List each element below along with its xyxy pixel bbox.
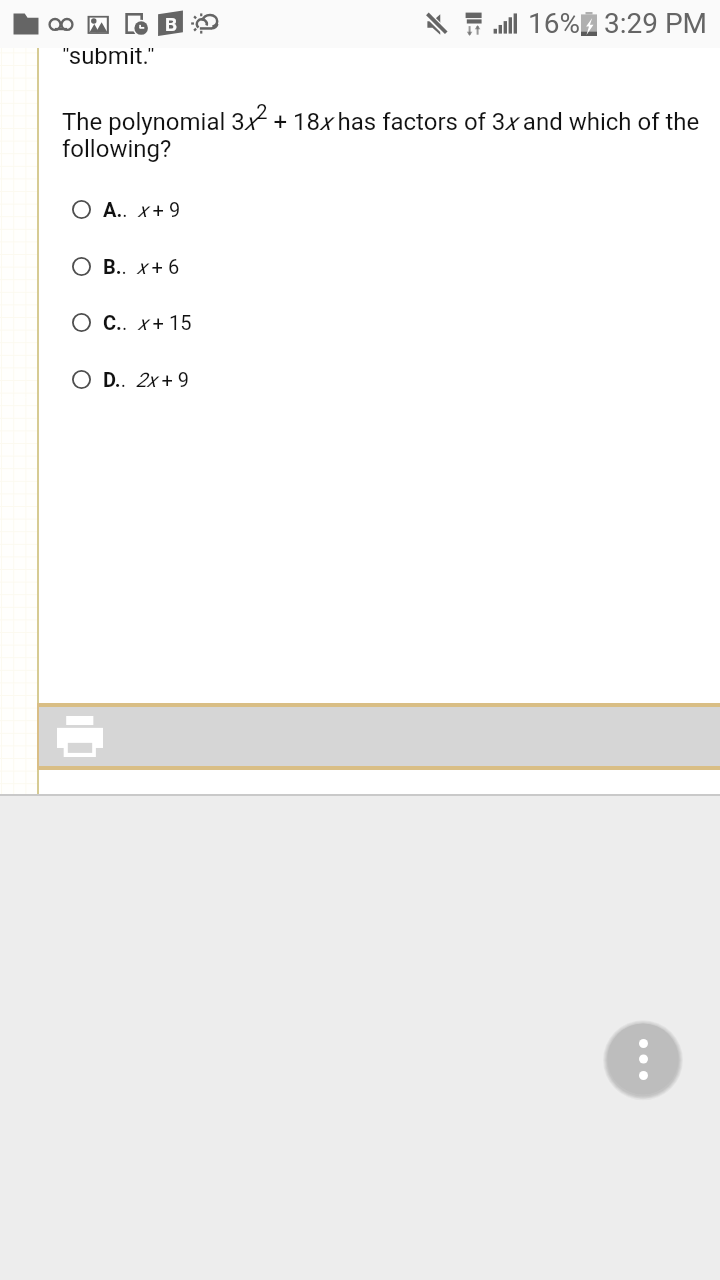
staticText: The polynomial 3x2 + 18x has factors of … xyxy=(62,100,710,163)
staticText: A.. xyxy=(103,198,128,221)
staticText: B xyxy=(165,13,178,35)
staticText: D.. xyxy=(103,368,126,391)
button[interactable]: C.. xyxy=(0,300,720,344)
staticText: x + 15 xyxy=(138,311,192,334)
staticText: x + 6 xyxy=(137,255,180,278)
button[interactable]: More options xyxy=(605,1021,681,1097)
button[interactable]: Print xyxy=(37,703,720,770)
staticText: 3:29 PM xyxy=(604,7,708,40)
staticText: 2x + 9 xyxy=(136,368,190,391)
staticText: B.. xyxy=(103,255,127,278)
button[interactable]: B.. xyxy=(0,244,720,288)
staticText: "submit." xyxy=(62,42,155,70)
button[interactable]: D.. xyxy=(0,357,720,401)
staticText: x + 9 xyxy=(138,198,181,221)
staticText: 16% xyxy=(528,7,580,40)
staticText: C.. xyxy=(103,311,128,334)
button[interactable]: A.. xyxy=(0,187,720,231)
